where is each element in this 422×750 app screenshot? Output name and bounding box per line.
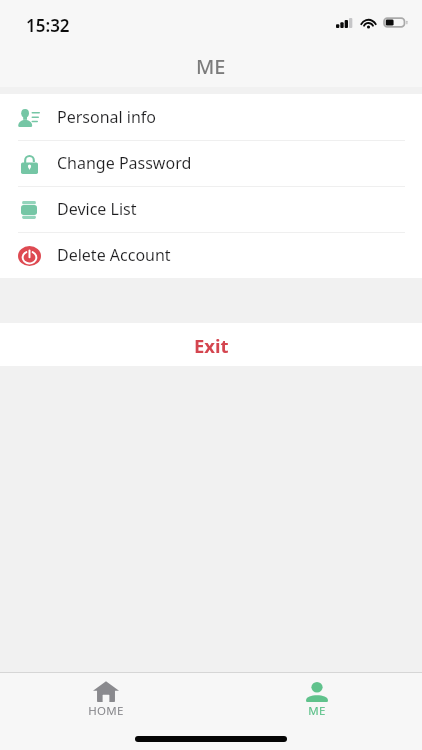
- staticText: ME: [196, 53, 226, 80]
- staticText: Delete Account: [57, 244, 171, 266]
- staticText: HOME: [88, 703, 124, 719]
- staticText: Device List: [57, 198, 137, 220]
- button[interactable]: ME: [257, 681, 377, 728]
- button[interactable]: Personal info: [0, 94, 422, 140]
- button[interactable]: Change Password: [0, 140, 422, 186]
- staticText: ME: [308, 703, 326, 719]
- staticText: Change Password: [57, 152, 192, 174]
- staticText: Personal info: [57, 106, 157, 128]
- button[interactable]: Exit: [0, 323, 422, 366]
- button[interactable]: Delete Account: [0, 232, 422, 278]
- staticText: Exit: [194, 333, 229, 358]
- button[interactable]: Device List: [0, 186, 422, 232]
- button[interactable]: HOME: [46, 681, 166, 728]
- staticText: 15:32: [26, 14, 70, 37]
